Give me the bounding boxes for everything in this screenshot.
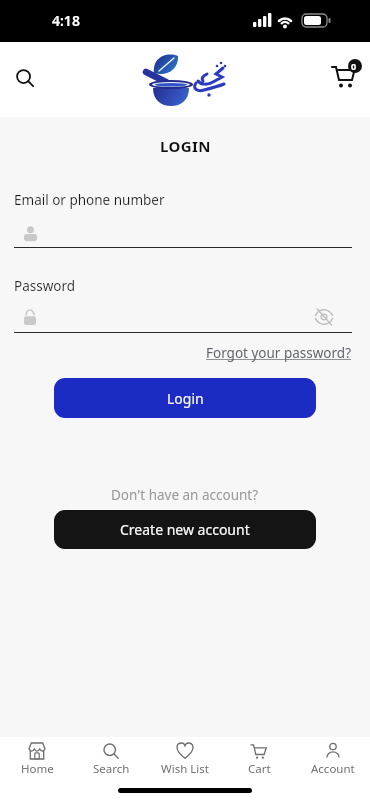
- staticText: Login: [167, 389, 204, 408]
- staticText: Search: [93, 761, 130, 777]
- button[interactable]: Home: [0, 737, 74, 800]
- button[interactable]: Wish List: [148, 737, 222, 800]
- button[interactable]: Account: [296, 737, 370, 800]
- staticText: 0: [351, 60, 357, 72]
- button[interactable]: 0: [328, 58, 366, 90]
- button[interactable]: [328, 58, 366, 90]
- button[interactable]: [315, 309, 333, 325]
- staticText: LOGIN: [160, 136, 211, 156]
- staticText: 4:18: [52, 11, 80, 30]
- button[interactable]: Login: [54, 378, 316, 418]
- staticText: Cart: [248, 761, 271, 777]
- staticText: Account: [311, 761, 355, 777]
- staticText: Home: [21, 761, 54, 777]
- staticText: Wish List: [161, 761, 209, 777]
- staticText: Create new account: [120, 520, 250, 539]
- staticText: Don't have an account?: [111, 486, 259, 504]
- staticText: Password: [14, 277, 76, 295]
- button[interactable]: [16, 69, 34, 87]
- staticText: Email or phone number: [14, 191, 165, 209]
- button[interactable]: Forgot your password?: [206, 344, 352, 362]
- button[interactable]: Create new account: [54, 510, 316, 549]
- button[interactable]: Cart: [222, 737, 296, 800]
- button[interactable]: Search: [74, 737, 148, 800]
